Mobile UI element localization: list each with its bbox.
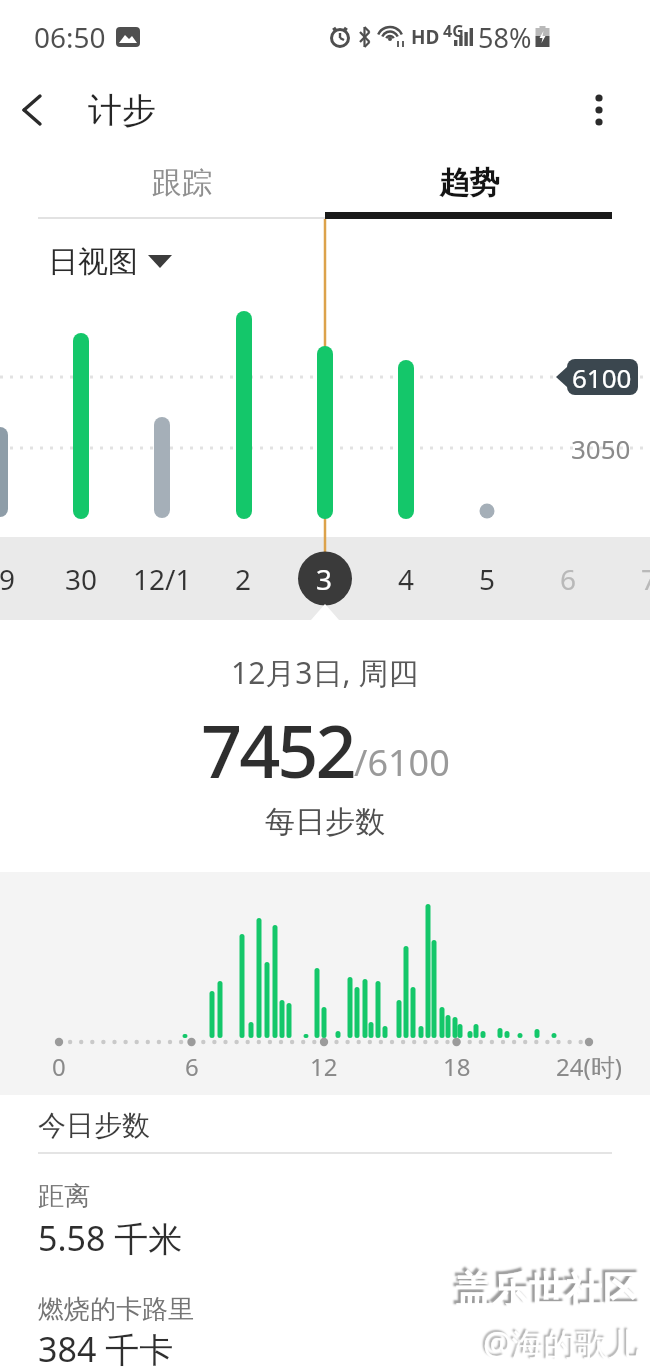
button[interactable]: 趋势	[325, 146, 612, 219]
staticText: 盖乐世社区	[455, 1267, 640, 1314]
staticText: 7	[641, 560, 650, 598]
staticText: 12月3日, 周四	[231, 652, 419, 693]
button[interactable]: 2	[203, 537, 284, 620]
staticText: @海的歌儿	[483, 1322, 640, 1366]
staticText: 0	[52, 1050, 66, 1083]
button[interactable]: 30	[41, 537, 122, 620]
staticText: /6100	[354, 738, 450, 787]
staticText: 4	[398, 560, 415, 598]
staticText: 24(时)	[556, 1050, 622, 1083]
button[interactable]: 距离	[0, 1180, 650, 1261]
button[interactable]	[0, 74, 64, 146]
staticText: 6100	[572, 360, 632, 395]
staticText: 4G	[443, 20, 464, 42]
staticText: 18	[443, 1050, 471, 1083]
staticText: 7452	[201, 701, 354, 799]
staticText: 距离	[38, 1180, 90, 1213]
staticText: 5	[479, 560, 496, 598]
button[interactable]: 12/1	[122, 537, 203, 620]
staticText: 58%	[478, 19, 532, 56]
button[interactable]: 燃烧的卡路里	[0, 1293, 650, 1372]
button[interactable]: 4	[366, 537, 447, 620]
staticText: 3050	[571, 431, 631, 465]
button[interactable]	[571, 74, 627, 146]
button[interactable]: 6	[528, 537, 609, 620]
staticText: 12	[310, 1050, 338, 1083]
staticText: 每日步数	[265, 803, 385, 841]
staticText: 今日步数	[38, 1108, 150, 1143]
staticText: 384 千卡	[38, 1326, 174, 1372]
staticText: 3	[316, 560, 333, 598]
staticText: 06:50	[34, 18, 106, 56]
staticText: 趋势	[439, 164, 499, 202]
button[interactable]: 跟踪	[38, 146, 325, 219]
staticText: HD	[411, 24, 440, 50]
staticText: 12/1	[133, 560, 192, 598]
staticText: 燃烧的卡路里	[38, 1293, 194, 1326]
staticText: 29	[0, 560, 16, 598]
staticText: 6	[560, 560, 577, 598]
staticText: 2	[235, 560, 252, 598]
button[interactable]: 29	[0, 537, 40, 620]
staticText: 6	[185, 1050, 199, 1083]
button[interactable]: 日视图	[48, 243, 172, 281]
staticText: 30	[65, 560, 98, 598]
staticText: 跟踪	[152, 164, 212, 202]
button[interactable]: 7	[609, 537, 650, 620]
button[interactable]: 5	[447, 537, 528, 620]
button[interactable]: 3	[284, 537, 365, 620]
staticText: 计步	[88, 89, 156, 132]
staticText: 5.58 千米	[38, 1215, 183, 1261]
staticText: 日视图	[48, 243, 138, 281]
